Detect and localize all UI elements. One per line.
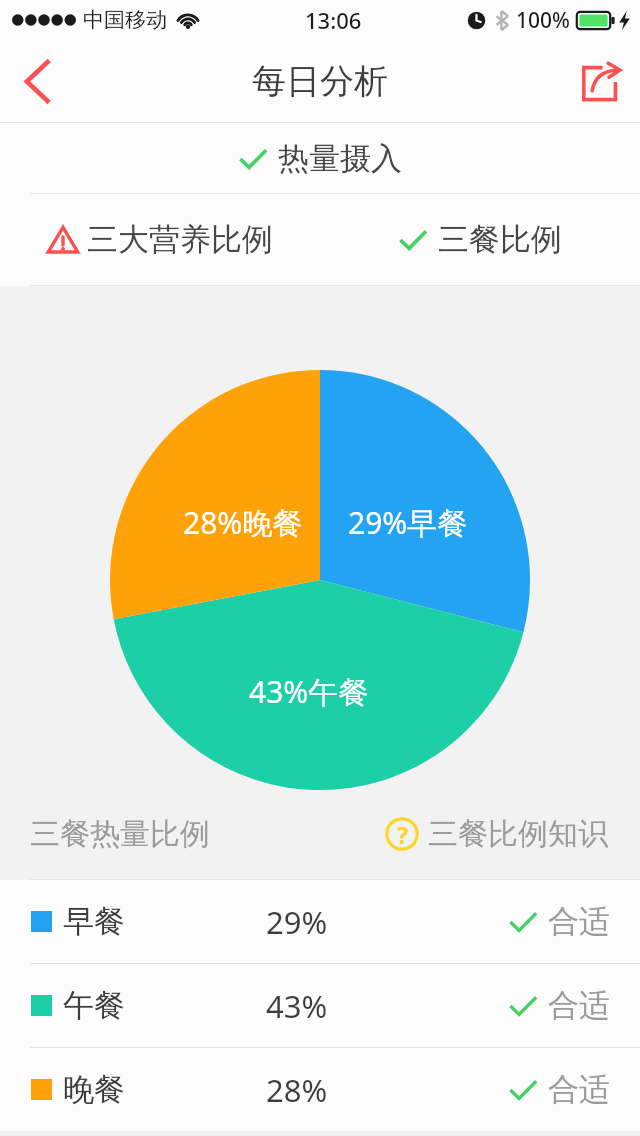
staticText: 三餐热量比例 bbox=[30, 815, 210, 853]
button[interactable]: Back bbox=[0, 40, 76, 123]
staticText: ? bbox=[397, 819, 408, 850]
staticText: 29%早餐 bbox=[348, 502, 468, 543]
staticText: 三大营养比例 bbox=[87, 220, 273, 259]
button[interactable]: Share bbox=[562, 40, 640, 123]
staticText: 合适 bbox=[548, 902, 610, 941]
staticText: 早餐 bbox=[63, 902, 125, 941]
staticText: 晚餐 bbox=[63, 1070, 125, 1109]
button[interactable]: 午餐 bbox=[0, 964, 640, 1047]
staticText: 43% bbox=[266, 985, 328, 1027]
button[interactable]: 三大营养比例 bbox=[0, 194, 320, 285]
button[interactable]: 早餐 bbox=[0, 880, 640, 963]
staticText: 每日分析 bbox=[252, 60, 388, 103]
staticText: 13:06 bbox=[305, 5, 362, 35]
button[interactable]: 热量摄入 bbox=[239, 139, 402, 178]
staticText: 100% bbox=[516, 6, 570, 35]
staticText: 28%晚餐 bbox=[183, 502, 303, 543]
button[interactable]: ? bbox=[385, 815, 608, 853]
staticText: 三餐比例知识 bbox=[428, 815, 608, 853]
staticText: 中国移动 bbox=[83, 7, 167, 33]
button[interactable]: 晚餐 bbox=[0, 1048, 640, 1131]
staticText: 热量摄入 bbox=[278, 139, 402, 178]
staticText: 午餐 bbox=[63, 986, 125, 1025]
button[interactable]: 三餐比例 bbox=[320, 194, 640, 285]
staticText: 三餐比例 bbox=[438, 220, 562, 259]
staticText: 43%午餐 bbox=[249, 671, 369, 712]
staticText: 合适 bbox=[548, 986, 610, 1025]
staticText: 29% bbox=[266, 901, 328, 943]
staticText: 合适 bbox=[548, 1070, 610, 1109]
staticText: 28% bbox=[266, 1069, 328, 1111]
